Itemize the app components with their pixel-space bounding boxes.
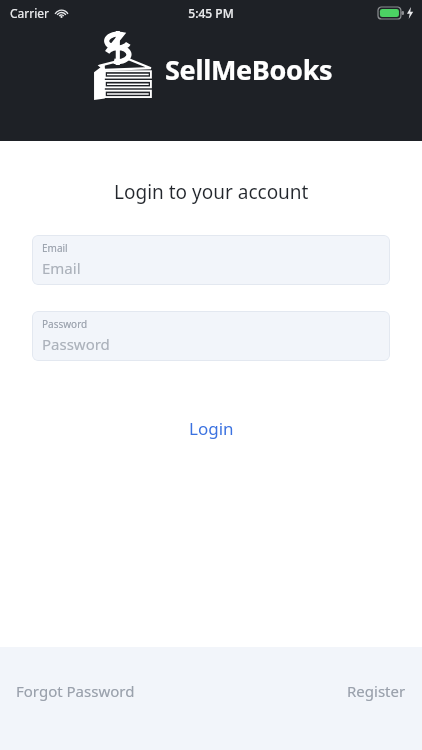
- staticText: Login to your account: [114, 179, 309, 205]
- staticText: SellMeBooks: [165, 51, 333, 88]
- staticText: Email: [42, 241, 68, 255]
- staticText: 5:45 PM: [188, 5, 234, 21]
- other: SellMeBooks logo: [89, 32, 161, 106]
- button[interactable]: Register: [339, 675, 422, 707]
- staticText: Forgot Password: [16, 681, 135, 701]
- button[interactable]: Email: [32, 235, 390, 285]
- staticText: Password: [42, 317, 88, 331]
- button[interactable]: Login: [171, 409, 252, 448]
- staticText: Carrier: [10, 5, 50, 21]
- button[interactable]: Password: [32, 311, 390, 361]
- staticText: Email: [42, 258, 81, 278]
- staticText: Register: [347, 681, 406, 701]
- button[interactable]: Forgot Password: [0, 675, 143, 707]
- staticText: Login: [189, 417, 234, 440]
- staticText: Password: [42, 334, 110, 354]
